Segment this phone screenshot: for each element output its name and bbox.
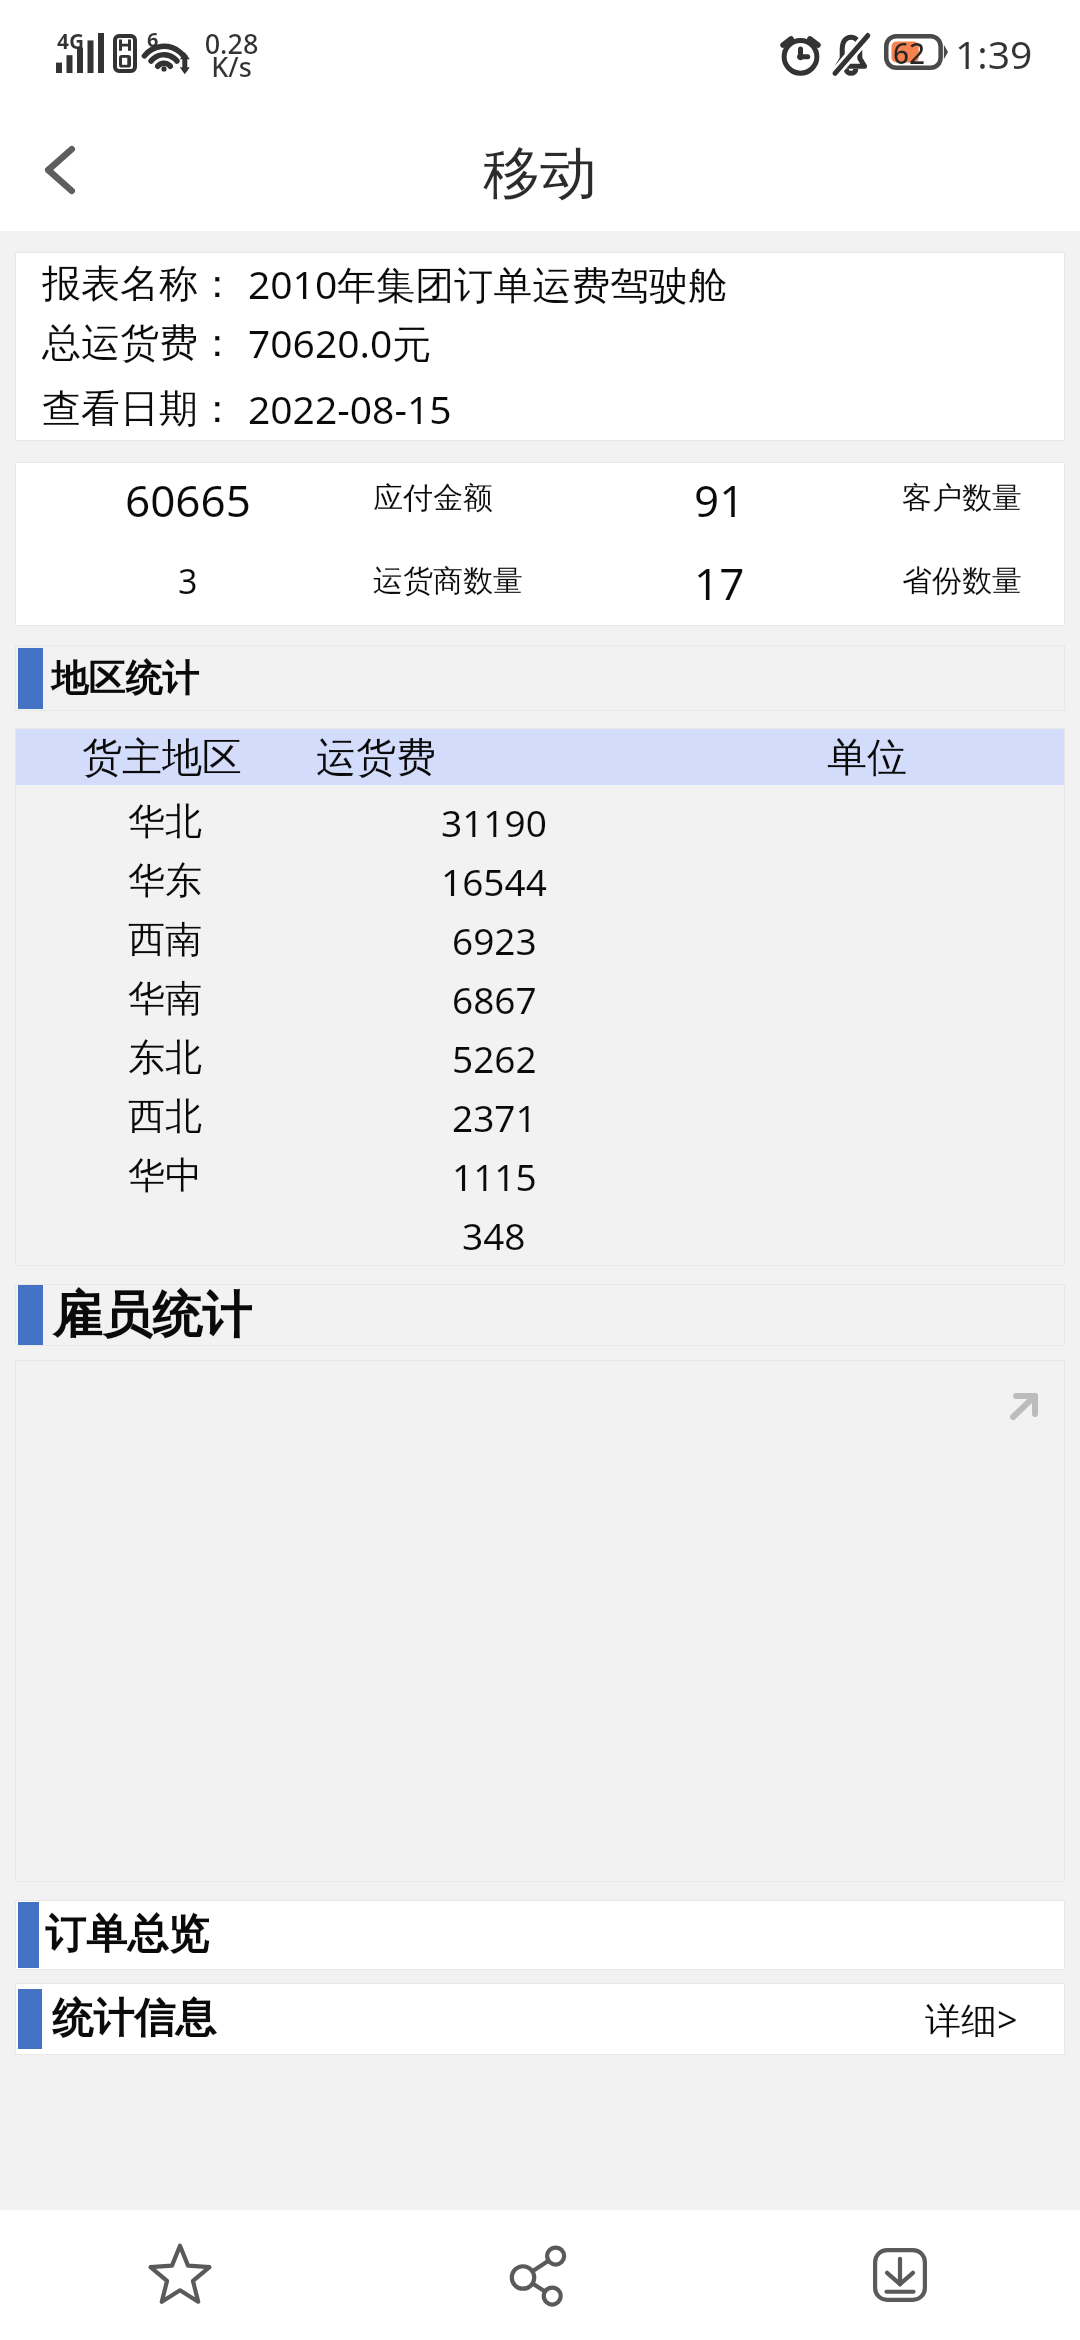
staticText: 华东 bbox=[128, 857, 202, 904]
staticText: 运货商数量 bbox=[373, 562, 523, 600]
staticText: 91 bbox=[694, 470, 745, 526]
staticText: 应付金额 bbox=[373, 479, 493, 517]
staticText: 查看日期： bbox=[42, 384, 237, 433]
staticText: 1115 bbox=[452, 1151, 537, 1201]
staticText: 6867 bbox=[452, 974, 537, 1024]
staticText: 2371 bbox=[452, 1092, 537, 1142]
staticText: 31190 bbox=[441, 797, 547, 847]
button[interactable]: 详细> bbox=[911, 1983, 1032, 2055]
staticText: 地区统计 bbox=[51, 655, 199, 702]
staticText: 统计信息 bbox=[52, 1993, 216, 2045]
button[interactable]: 地区统计 bbox=[15, 645, 1065, 711]
button[interactable]: Favorite bbox=[0, 2210, 360, 2340]
staticText: 3 bbox=[178, 558, 198, 604]
staticText: 雇员统计 bbox=[52, 1284, 252, 1346]
staticText: 西南 bbox=[128, 916, 202, 963]
staticText: 5262 bbox=[452, 1033, 537, 1083]
staticText: 4G bbox=[57, 27, 85, 56]
staticText: 华南 bbox=[128, 975, 202, 1022]
button[interactable]: Back bbox=[22, 132, 98, 208]
staticText: 0.28 K/s bbox=[204, 25, 259, 85]
staticText: 总运货费： bbox=[42, 318, 237, 367]
staticText: 客户数量 bbox=[902, 479, 1022, 517]
staticText: 货主地区 bbox=[82, 732, 242, 782]
staticText: 6 bbox=[147, 26, 159, 53]
staticText: 详细> bbox=[925, 1995, 1018, 2044]
button[interactable]: 订单总览 bbox=[15, 1900, 1065, 1970]
staticText: 70620.0元 bbox=[248, 316, 432, 369]
staticText: 移动 bbox=[483, 138, 597, 210]
staticText: 单位 bbox=[827, 732, 907, 782]
staticText: 60665 bbox=[125, 470, 251, 526]
staticText: 348 bbox=[462, 1210, 526, 1260]
button[interactable]: Download bbox=[720, 2210, 1080, 2340]
staticText: 2010年集团订单运费驾驶舱 bbox=[248, 257, 728, 310]
staticText: 6923 bbox=[452, 915, 537, 965]
staticText: 订单总览 bbox=[45, 1909, 209, 1961]
button[interactable]: 统计信息 bbox=[15, 1983, 1065, 2055]
staticText: 2022-08-15 bbox=[248, 382, 452, 435]
staticText: 62 bbox=[893, 34, 926, 70]
staticText: 华中 bbox=[128, 1152, 202, 1199]
staticText: 16544 bbox=[441, 856, 547, 906]
staticText: 17 bbox=[694, 553, 745, 609]
button[interactable]: 雇员统计 bbox=[15, 1284, 1065, 1346]
staticText: 华北 bbox=[128, 798, 202, 845]
staticText: 西北 bbox=[128, 1093, 202, 1140]
button[interactable]: Share bbox=[360, 2210, 720, 2340]
staticText: 1:39 bbox=[955, 27, 1033, 80]
staticText: 运货费 bbox=[316, 732, 436, 782]
staticText: 省份数量 bbox=[902, 562, 1022, 600]
staticText: 东北 bbox=[128, 1034, 202, 1081]
staticText: 报表名称： bbox=[42, 259, 237, 308]
